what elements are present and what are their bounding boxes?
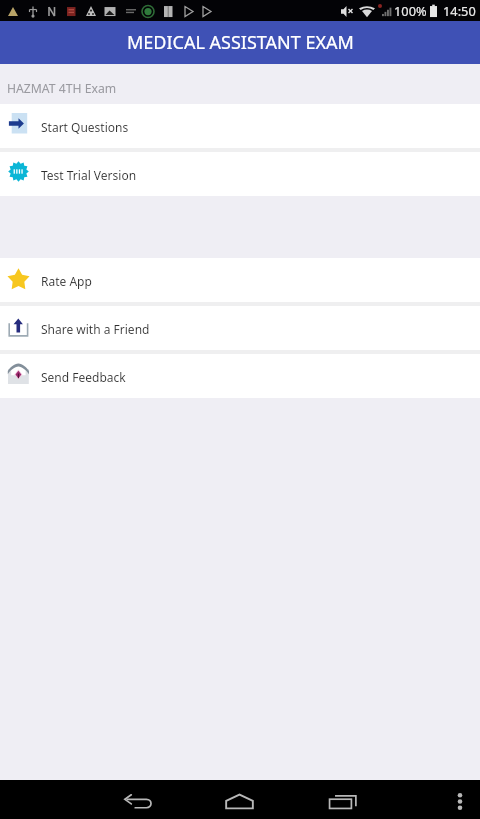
staticText: HAZMAT 4TH Exam (7, 80, 117, 97)
staticText: MEDICAL ASSISTANT EXAM (127, 30, 354, 55)
button[interactable]: Share with a Friend (0, 306, 480, 350)
staticText: 100% (394, 2, 427, 19)
button[interactable]: Test Trial Version (0, 152, 480, 196)
button[interactable]: More options (442, 782, 478, 819)
button[interactable]: Send Feedback (0, 354, 480, 398)
button[interactable]: Home (216, 782, 263, 819)
staticText: Start Questions (41, 119, 129, 135)
button[interactable]: Rate App (0, 258, 480, 302)
staticText: 14:50 (443, 2, 476, 19)
button[interactable]: Recent apps (319, 782, 366, 819)
staticText: Test Trial Version (41, 167, 137, 183)
button[interactable]: Start Questions (0, 104, 480, 148)
button[interactable]: Back (114, 782, 161, 819)
staticText: Share with a Friend (41, 321, 150, 337)
staticText: Rate App (41, 273, 92, 289)
staticText: Send Feedback (41, 369, 126, 385)
